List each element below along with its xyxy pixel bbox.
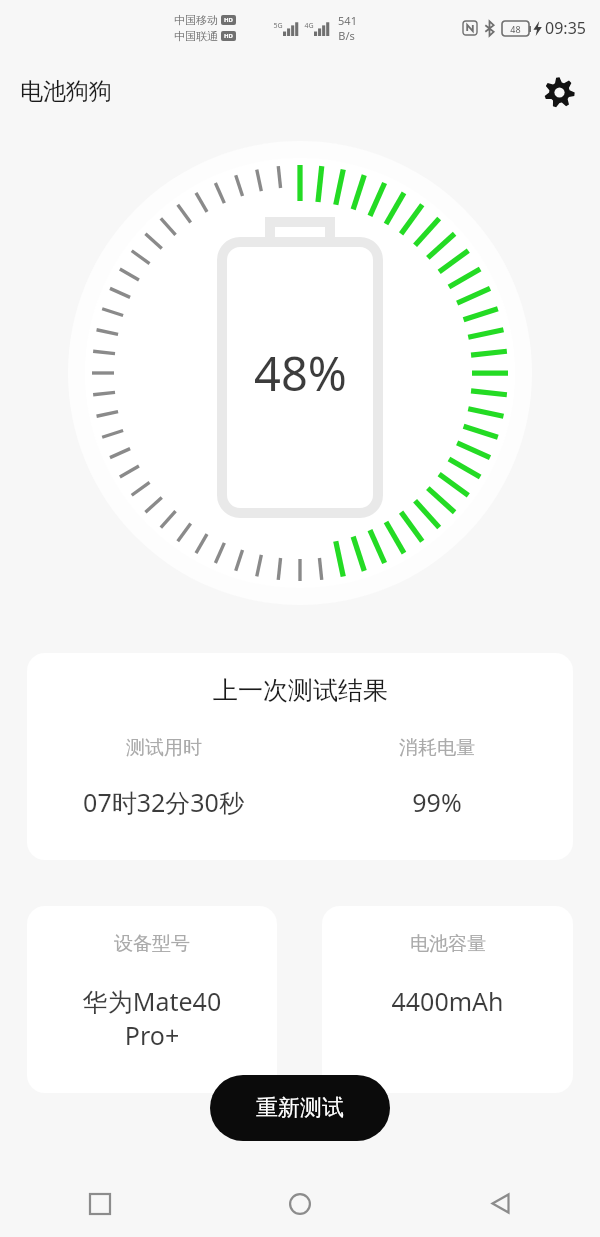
button[interactable]: Settings [536, 69, 582, 115]
staticText: 07时32分30秒 [83, 785, 244, 819]
button[interactable]: Recents [0, 1170, 200, 1237]
staticText: 华为Mate40 Pro+ [33, 984, 271, 1052]
staticText: 电池容量 [410, 932, 486, 956]
button[interactable]: Back [400, 1170, 600, 1237]
staticText: B/s [338, 28, 355, 43]
staticText: 中国联通 [174, 29, 218, 43]
staticText: 4G [304, 21, 314, 31]
staticText: HD [224, 32, 233, 40]
staticText: 99% [412, 785, 462, 819]
staticText: 重新测试 [256, 1094, 344, 1122]
button[interactable]: 电池容量 [322, 906, 573, 1093]
button[interactable]: Home [200, 1170, 400, 1237]
staticText: 上一次测试结果 [213, 675, 388, 706]
button[interactable]: 设备型号 [27, 906, 277, 1093]
staticText: 09:35 [545, 17, 586, 39]
staticText: 48 [510, 23, 521, 35]
staticText: HD [224, 16, 233, 24]
staticText: 设备型号 [114, 932, 190, 956]
staticText: 电池狗狗 [20, 77, 112, 106]
staticText: 中国移动 [174, 13, 218, 27]
staticText: 541 [338, 13, 357, 28]
staticText: 4400mAh [328, 984, 567, 1018]
staticText: 消耗电量 [399, 736, 475, 760]
staticText: 测试用时 [126, 736, 202, 760]
staticText: 48% [254, 341, 347, 405]
staticText: 5G [273, 21, 283, 31]
button[interactable]: 上一次测试结果 [27, 653, 573, 860]
button[interactable]: 重新测试 [210, 1075, 390, 1141]
